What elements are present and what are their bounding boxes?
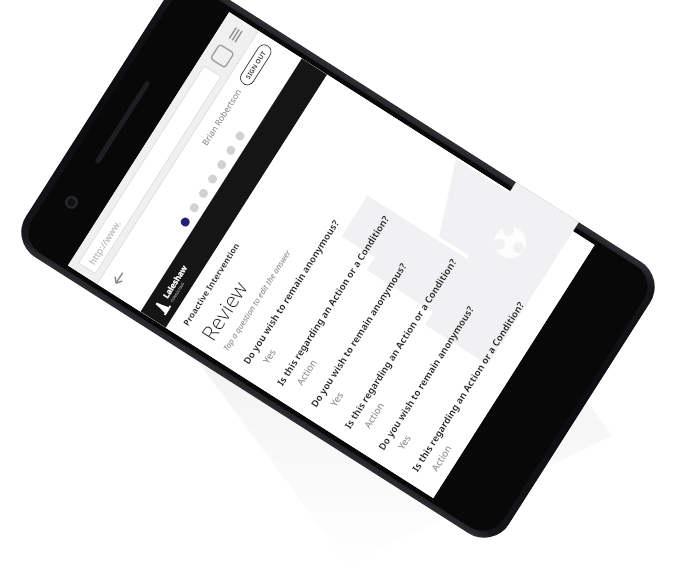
button[interactable]: [215, 158, 228, 171]
staticText: Yes: [327, 389, 346, 409]
button[interactable]: Do you wish to remain anonymous?: [240, 126, 414, 375]
staticText: Yes: [260, 346, 279, 366]
button[interactable]: Do you wish to remain anonymous?: [375, 212, 549, 461]
staticText: Proactive Intervention: [180, 241, 242, 328]
button[interactable]: Is this regarding an Action or a Conditi…: [342, 191, 515, 440]
button[interactable]: Is this regarding an Action or a Conditi…: [274, 148, 447, 397]
button[interactable]: [225, 144, 237, 156]
staticText: Action: [293, 356, 320, 387]
button[interactable]: http://www.: [78, 65, 222, 274]
staticText: Brian Robertson: [199, 87, 244, 148]
button[interactable]: [188, 201, 200, 214]
staticText: Is this regarding an Action or a Conditi…: [342, 255, 460, 431]
staticText: Laleshaw: [160, 262, 190, 300]
button[interactable]: Menu: [224, 23, 247, 47]
staticText: Review: [195, 275, 255, 346]
button[interactable]: Tabs: [210, 44, 234, 68]
button[interactable]: SIGN OUT: [237, 41, 274, 88]
button[interactable]: [197, 187, 210, 199]
staticText: Is this regarding an Action or a Conditi…: [409, 298, 527, 474]
staticText: Tap a question to edit the answer: [220, 247, 293, 353]
staticText: Do you wish to remain anonymous?: [375, 303, 477, 453]
button[interactable]: Back: [106, 264, 133, 292]
staticText: Action: [428, 442, 455, 473]
staticText: Yes: [395, 432, 414, 452]
staticText: http://www.: [86, 218, 123, 266]
staticText: CONSULTING: [169, 281, 186, 303]
button[interactable]: [234, 130, 246, 142]
staticText: Do you wish to remain anonymous?: [240, 217, 342, 367]
staticText: Action: [361, 399, 387, 430]
button[interactable]: [206, 173, 219, 185]
staticText: Is this regarding an Action or a Conditi…: [274, 212, 392, 388]
staticText: Do you wish to remain anonymous?: [308, 260, 410, 410]
staticText: SIGN OUT: [243, 49, 268, 81]
button[interactable]: [179, 216, 191, 228]
button[interactable]: Is this regarding an Action or a Conditi…: [409, 234, 582, 483]
button[interactable]: Do you wish to remain anonymous?: [308, 169, 481, 418]
